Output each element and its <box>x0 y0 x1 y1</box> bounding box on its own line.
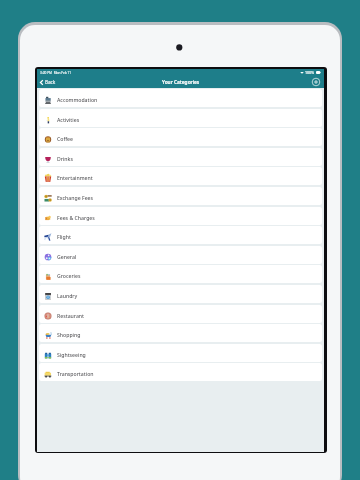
button[interactable]: Coffee <box>39 128 322 146</box>
button[interactable]: Accommodation <box>39 89 322 107</box>
staticText: Shopping <box>57 331 81 338</box>
button[interactable]: Laundry <box>39 285 322 303</box>
staticText: Fees & Charges <box>57 214 95 221</box>
staticText: Entertainment <box>57 174 93 181</box>
staticText: General <box>57 253 77 260</box>
button[interactable]: Shopping <box>39 324 322 342</box>
button[interactable]: Exchange Fees <box>39 187 322 205</box>
staticText: Restaurant <box>57 312 85 319</box>
staticText: Sightseeing <box>57 351 86 358</box>
button[interactable]: Sightseeing <box>39 344 322 362</box>
staticText: Back <box>45 79 56 85</box>
button[interactable]: Transportation <box>39 363 322 381</box>
staticText: Activities <box>57 116 80 123</box>
button[interactable]: Restaurant <box>39 305 322 323</box>
staticText: Exchange Fees <box>57 194 94 201</box>
staticText: Accommodation <box>57 96 98 103</box>
staticText: Laundry <box>57 292 78 299</box>
staticText: Your Categories <box>162 79 200 86</box>
button[interactable]: Activities <box>39 109 322 127</box>
staticText: Flight <box>57 233 71 240</box>
button[interactable]: Groceries <box>39 265 322 283</box>
button[interactable]: General <box>39 246 322 264</box>
staticText: Drinks <box>57 155 73 162</box>
staticText: 3:20 PM Mon Feb 11 <box>40 71 72 75</box>
button[interactable]: Drinks <box>39 148 322 166</box>
staticText: Coffee <box>57 135 73 142</box>
button[interactable]: Flight <box>39 226 322 244</box>
button[interactable]: Back <box>37 76 60 88</box>
staticText: Groceries <box>57 272 81 279</box>
staticText: Transportation <box>57 370 94 377</box>
staticText: 100% <box>304 70 316 75</box>
button[interactable]: Fees & Charges <box>39 207 322 225</box>
button[interactable]: Add category <box>310 76 322 88</box>
button[interactable]: Entertainment <box>39 167 322 185</box>
